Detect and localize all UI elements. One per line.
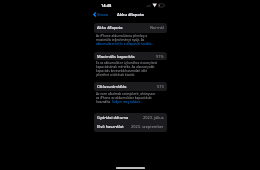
other: Cellular, Wi-Fi and battery status — [146, 3, 166, 8]
button[interactable]: Az iPhone akkumulátora jelenleg a maximá… — [96, 34, 157, 46]
staticText: 14:48 — [101, 3, 112, 8]
staticText: Maximális kapacitás — [97, 54, 135, 59]
staticText: Vissza — [97, 12, 108, 17]
staticText: 2023. július — [143, 115, 164, 120]
button[interactable]: Maximális kapacitás — [94, 52, 167, 60]
button[interactable]: Akku állapota — [94, 23, 167, 32]
staticText: 91% — [156, 54, 164, 59]
button[interactable]: Első használat — [94, 122, 167, 131]
staticText: Gyártási dátuma — [97, 115, 129, 120]
staticText: Első használat — [97, 124, 124, 129]
staticText: Akku állapota — [117, 12, 144, 17]
button[interactable]: Vissza — [92, 11, 109, 18]
button[interactable]: Az ezen alkalmak számjelzett, ahányszor … — [96, 92, 157, 104]
staticText: Ez az akkumulátor új korához viszonyítot… — [96, 61, 157, 77]
button[interactable]: Ciklusszámlálás — [94, 82, 167, 91]
staticText: Ciklusszámlálás — [97, 84, 127, 89]
staticText: Akku állapota — [97, 25, 123, 30]
staticText: 573 — [157, 84, 164, 89]
staticText: Normál — [150, 25, 164, 30]
staticText: 2023. szeptember — [131, 124, 164, 129]
button[interactable]: Gyártási dátuma — [94, 113, 167, 122]
